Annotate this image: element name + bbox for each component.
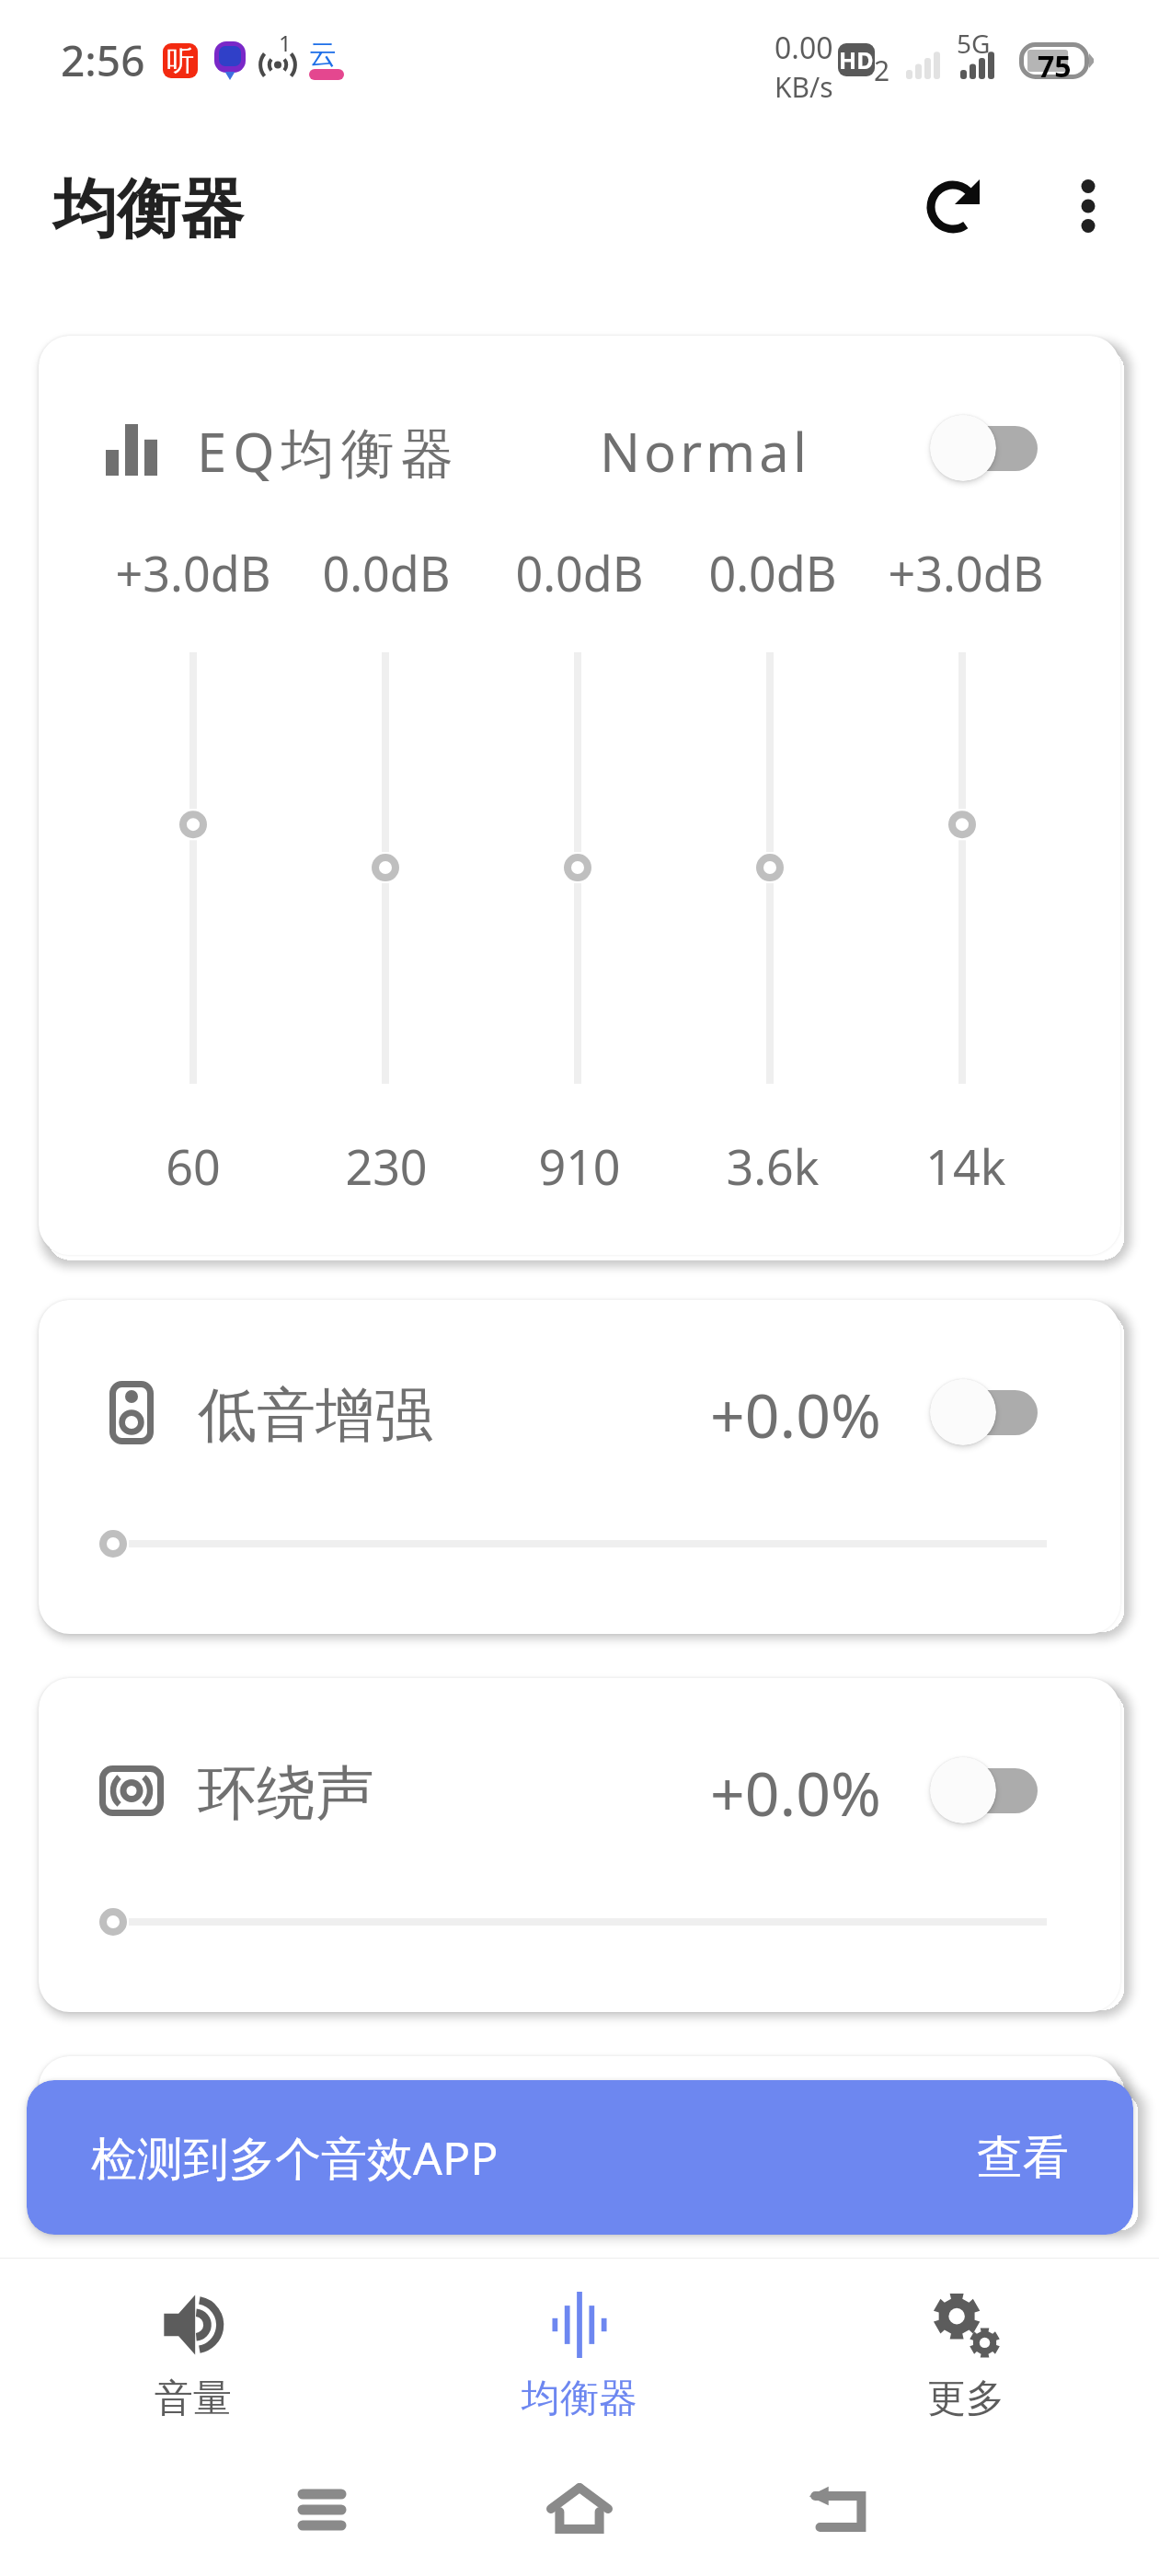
staticText: 0.00 (775, 28, 833, 68)
staticText: 检测到多个音效APP (91, 2126, 499, 2189)
button[interactable] (742, 652, 798, 1084)
staticText: 3.6k (676, 1133, 869, 1199)
staticText: +3.0dB (97, 540, 290, 605)
staticText: 75 (1038, 46, 1072, 86)
staticText: 环绕声 (198, 1756, 374, 1831)
staticText: HD (839, 44, 874, 75)
staticText: 5G (957, 26, 991, 61)
staticText: 910 (483, 1133, 676, 1199)
staticText: 0.0dB (290, 540, 483, 605)
button[interactable]: 音量 (0, 2259, 386, 2442)
button[interactable]: Back (777, 2449, 897, 2569)
button[interactable] (930, 415, 1038, 481)
button[interactable] (166, 652, 221, 1084)
staticText: KB/s (775, 68, 833, 106)
button[interactable]: 均衡器 (386, 2259, 773, 2442)
staticText: 0.0dB (483, 540, 676, 605)
button[interactable]: Recent apps (262, 2449, 382, 2569)
staticText: 0.0dB (676, 540, 869, 605)
staticText: 2:56 (61, 31, 145, 89)
staticText: EQ均衡器 (197, 415, 461, 488)
staticText: +0.0% (710, 1751, 881, 1834)
staticText: 2 (874, 52, 890, 89)
button[interactable]: 更多 (773, 2259, 1159, 2442)
button[interactable] (930, 1379, 1038, 1445)
button[interactable]: More options (1042, 160, 1134, 252)
button[interactable] (97, 1903, 1047, 1940)
button[interactable] (935, 652, 990, 1084)
button[interactable]: Home (520, 2449, 639, 2569)
staticText: 云 (309, 37, 337, 72)
staticText: +3.0dB (869, 540, 1062, 605)
staticText: +0.0% (710, 1373, 881, 1455)
button[interactable]: Refresh (907, 159, 999, 251)
staticText: 音量 (155, 2375, 232, 2423)
button[interactable] (550, 652, 605, 1084)
staticText: 14k (869, 1133, 1062, 1199)
staticText: 查看 (977, 2129, 1069, 2187)
staticText: 更多 (927, 2375, 1004, 2423)
staticText: 230 (290, 1133, 483, 1199)
staticText: 听 (166, 43, 194, 78)
staticText: Normal (600, 415, 810, 488)
button[interactable] (358, 652, 413, 1084)
button[interactable] (97, 1525, 1047, 1562)
staticText: 60 (97, 1133, 290, 1199)
staticText: 均衡器 (53, 170, 244, 250)
staticText: 低音增强 (198, 1378, 433, 1453)
button[interactable] (930, 1757, 1038, 1823)
staticText: 1 (279, 28, 292, 58)
button[interactable]: 检测到多个音效APP (27, 2080, 1133, 2235)
staticText: 均衡器 (522, 2375, 637, 2423)
